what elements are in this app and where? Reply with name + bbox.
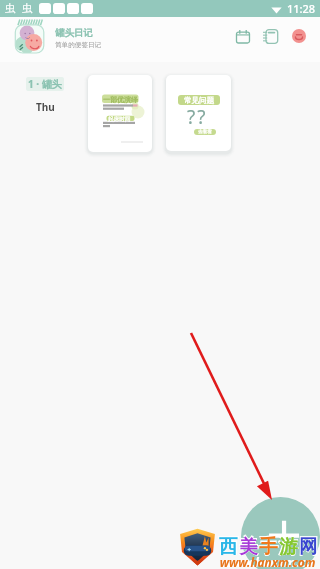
staticText: www.hanxm.com	[218, 554, 317, 569]
staticText: 去看看	[198, 129, 212, 135]
staticText: 简单的便签日记	[55, 41, 102, 49]
button[interactable]: Add note	[241, 497, 320, 569]
staticText: 手	[258, 533, 278, 559]
staticText: 西	[218, 533, 238, 559]
staticText: 虫	[5, 2, 16, 15]
staticText: 常见问题	[184, 96, 214, 105]
staticText: 手	[259, 535, 278, 558]
staticText: 游	[278, 533, 298, 559]
staticText: 起床时间	[108, 116, 131, 123]
staticText: 美	[239, 535, 258, 558]
staticText: 1 · 罐头	[28, 77, 62, 91]
staticText: 虫	[22, 2, 33, 15]
button[interactable]: 常见问题	[166, 75, 231, 151]
staticText: 网	[299, 535, 318, 558]
button[interactable]: 一部优演绎	[88, 75, 152, 152]
staticText: 罐头日记	[55, 27, 93, 39]
staticText: 网	[298, 533, 318, 559]
staticText: 游	[279, 535, 298, 558]
staticText: 西	[219, 535, 238, 558]
button[interactable]: Profile	[286, 23, 312, 49]
staticText: Thu	[36, 100, 55, 114]
button[interactable]: Notes	[257, 23, 283, 49]
button[interactable]: Calendar	[230, 23, 256, 49]
staticText: www.hanxm.com	[218, 554, 317, 569]
staticText: 11:28	[287, 1, 316, 16]
staticText: 一部优演绎	[103, 95, 138, 104]
staticText: 美	[238, 533, 258, 559]
staticText: ??	[187, 104, 208, 130]
